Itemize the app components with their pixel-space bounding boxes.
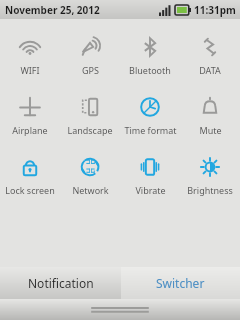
button[interactable]: DATA xyxy=(180,25,240,85)
staticText: November 25, 2012 xyxy=(5,3,100,17)
staticText: Vibrate xyxy=(135,184,166,196)
button[interactable]: Switcher xyxy=(121,267,240,299)
staticText: Notification xyxy=(28,275,94,291)
staticText: WIFI xyxy=(20,64,40,76)
staticText: Lock screen xyxy=(5,184,55,196)
button[interactable]: WIFI xyxy=(0,25,60,85)
staticText: Airplane xyxy=(12,124,48,136)
other: Drag handle xyxy=(0,305,240,315)
button[interactable]: Mute xyxy=(180,85,240,145)
button[interactable]: Network xyxy=(60,145,120,205)
staticText: 11:31pm xyxy=(194,3,236,17)
staticText: Switcher xyxy=(156,275,205,291)
staticText: Time format xyxy=(124,124,177,136)
button[interactable]: Airplane xyxy=(0,85,60,145)
button[interactable]: Notification xyxy=(0,267,121,299)
button[interactable]: Lock screen xyxy=(0,145,60,205)
button[interactable]: Vibrate xyxy=(120,145,180,205)
button[interactable]: Bluetooth xyxy=(120,25,180,85)
staticText: GPS xyxy=(82,64,99,76)
staticText: Bluetooth xyxy=(129,64,171,76)
button[interactable]: Landscape xyxy=(60,85,120,145)
button[interactable]: Brightness xyxy=(180,145,240,205)
button[interactable]: Time format xyxy=(120,85,180,145)
staticText: Brightness xyxy=(187,184,233,196)
button[interactable]: GPS xyxy=(60,25,120,85)
staticText: DATA xyxy=(199,64,221,76)
staticText: Landscape xyxy=(67,124,113,136)
staticText: Mute xyxy=(199,124,222,136)
staticText: Network xyxy=(72,184,109,196)
